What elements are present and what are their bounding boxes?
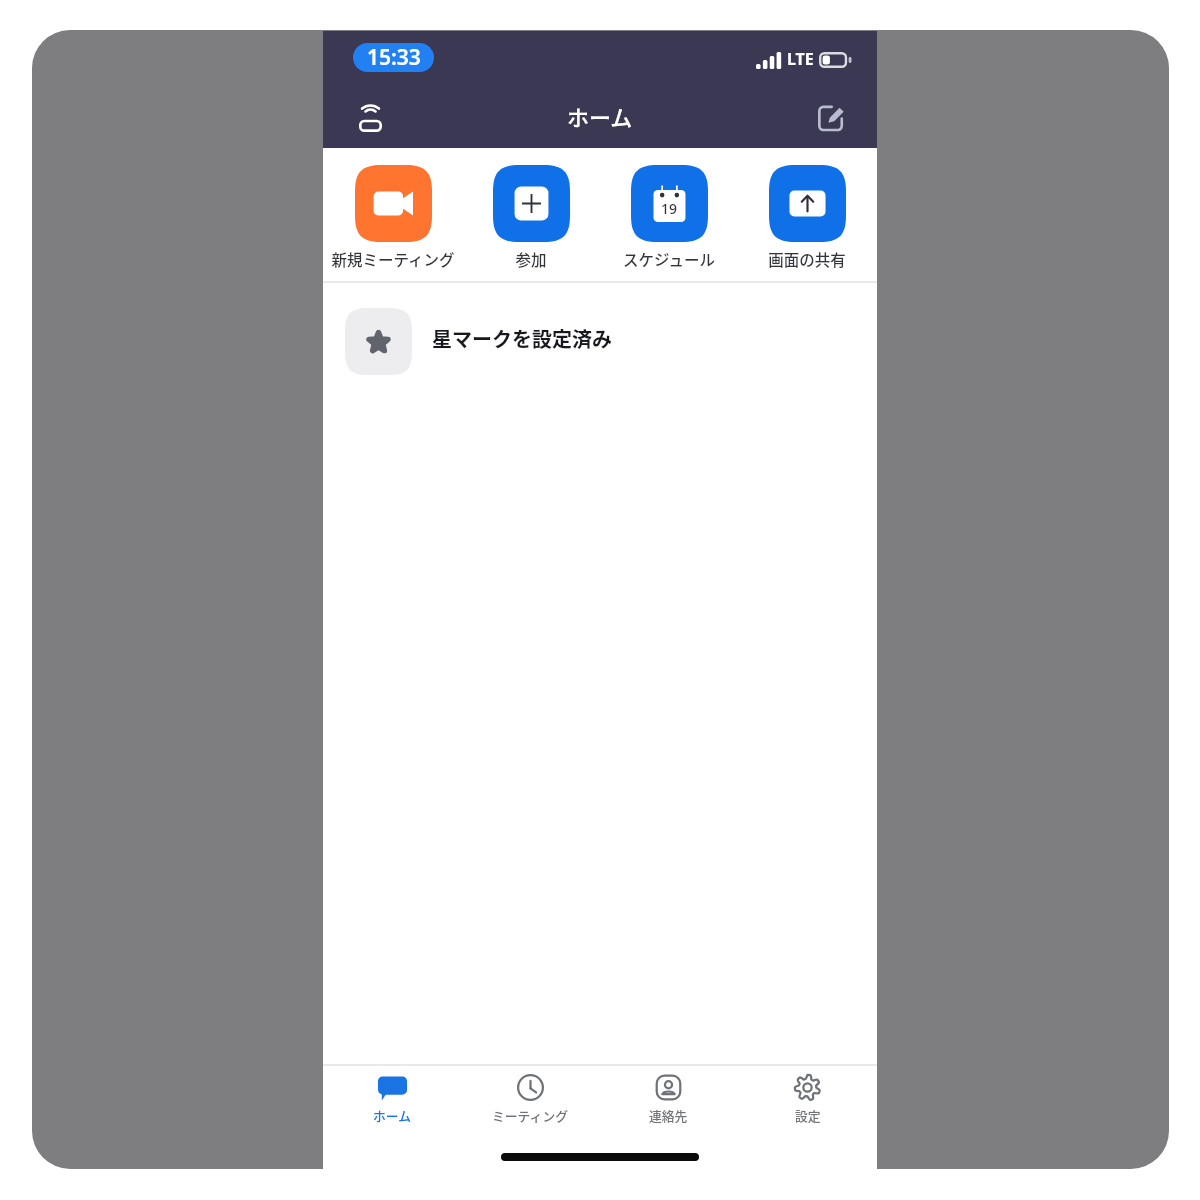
button[interactable]: New message: [807, 95, 853, 141]
button[interactable]: 画面の共有: [739, 148, 875, 270]
staticText: 19: [661, 199, 678, 218]
staticText: 星マークを設定済み: [432, 324, 612, 353]
staticText: 連絡先: [649, 1106, 688, 1125]
button[interactable]: 星マークを設定済み: [323, 283, 877, 396]
staticText: 画面の共有: [768, 248, 846, 270]
button[interactable]: 新規ミーティング: [325, 148, 461, 270]
button[interactable]: Share screen: [347, 95, 393, 141]
staticText: ホーム: [373, 1106, 412, 1125]
button[interactable]: 19: [601, 148, 737, 270]
staticText: スケジュール: [623, 248, 715, 270]
staticText: 15:33: [367, 43, 421, 72]
button[interactable]: 連絡先: [599, 1066, 738, 1125]
staticText: 参加: [515, 248, 547, 270]
staticText: ホーム: [567, 100, 633, 132]
button[interactable]: 参加: [463, 148, 599, 270]
staticText: ミーティング: [492, 1106, 569, 1125]
staticText: 設定: [795, 1106, 821, 1125]
staticText: LTE: [787, 48, 814, 70]
staticText: 新規ミーティング: [331, 248, 455, 270]
button[interactable]: ミーティング: [461, 1066, 599, 1125]
button[interactable]: ホーム: [323, 1066, 461, 1125]
button[interactable]: 設定: [738, 1066, 877, 1125]
